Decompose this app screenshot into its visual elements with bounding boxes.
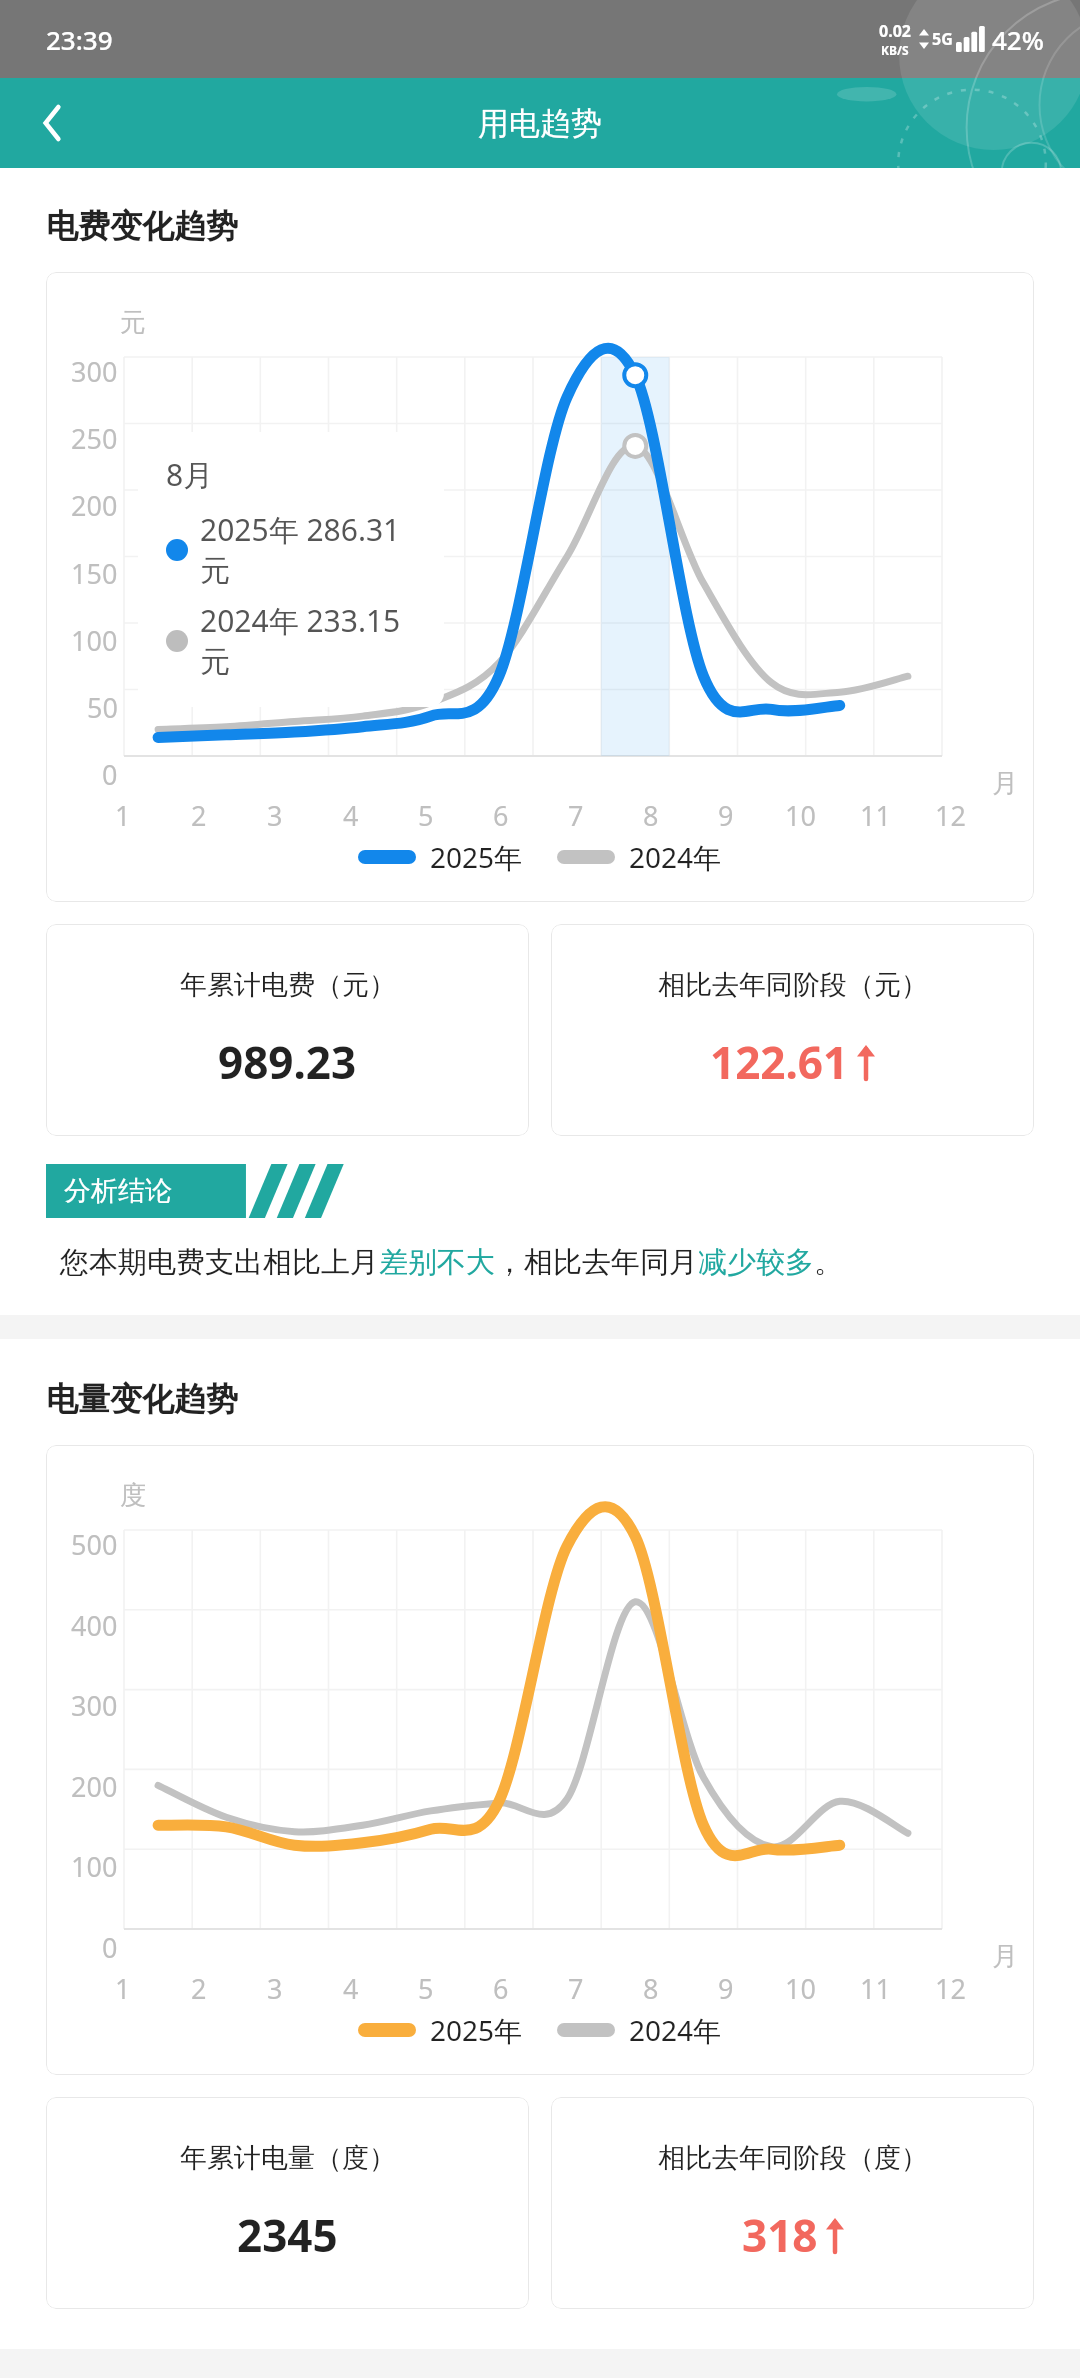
staticText: 度: [120, 1479, 146, 1512]
staticText: 9: [718, 1970, 734, 2007]
staticText: 3: [267, 797, 283, 834]
staticText: 6: [493, 1970, 509, 2007]
staticText: 2024年: [629, 838, 722, 876]
staticText: 2: [191, 1970, 207, 2007]
button[interactable]: 年累计电费（元）: [46, 924, 529, 1136]
staticText: 318: [742, 2205, 818, 2265]
staticText: 8: [643, 797, 659, 834]
button[interactable]: 相比去年同阶段（度）: [551, 2097, 1034, 2309]
staticText: 250: [71, 420, 118, 457]
staticText: 年累计电费（元）: [180, 968, 396, 1002]
staticText: 分析结论: [64, 1174, 172, 1208]
staticText: 5: [418, 1970, 434, 2007]
staticText: 1: [115, 797, 131, 834]
staticText: 7: [568, 1970, 584, 2007]
staticText: 月: [992, 1940, 1018, 1973]
staticText: 2025年: [430, 2011, 523, 2049]
staticText: 月: [992, 767, 1018, 800]
staticText: 4: [343, 797, 359, 834]
staticText: 元: [120, 306, 146, 339]
staticText: 50: [87, 689, 118, 726]
staticText: 6: [493, 797, 509, 834]
button[interactable]: 年累计电量（度）: [46, 2097, 529, 2309]
staticText: 100: [71, 1848, 118, 1885]
staticText: 2024年: [629, 2011, 722, 2049]
staticText: 10: [785, 1970, 816, 2007]
staticText: 300: [71, 1687, 118, 1724]
staticText: 年累计电量（度）: [180, 2141, 396, 2175]
staticText: 150: [71, 555, 118, 592]
staticText: 200: [71, 487, 118, 524]
staticText: 300: [71, 353, 118, 390]
staticText: 2025年: [430, 838, 523, 876]
staticText: 相比去年同阶段（度）: [658, 2141, 928, 2175]
staticText: KB/S: [881, 42, 909, 58]
staticText: 2024年 233.15元: [200, 600, 426, 681]
staticText: 8: [643, 1970, 659, 2007]
staticText: 400: [71, 1607, 118, 1644]
staticText: 2345: [237, 2205, 338, 2265]
staticText: 100: [71, 622, 118, 659]
staticText: 0.02: [879, 20, 911, 42]
button[interactable]: Back: [22, 93, 82, 153]
staticText: 9: [718, 797, 734, 834]
button[interactable]: 相比去年同阶段（元）: [551, 924, 1034, 1136]
staticText: 7: [568, 797, 584, 834]
staticText: 相比去年同阶段（元）: [658, 968, 928, 1002]
staticText: 4: [343, 1970, 359, 2007]
staticText: 0: [102, 1929, 118, 1966]
staticText: 2: [191, 797, 207, 834]
staticText: 8月: [166, 454, 214, 495]
staticText: 0: [102, 756, 118, 793]
staticText: 12: [935, 1970, 966, 2007]
staticText: 11: [860, 797, 891, 834]
staticText: 5: [418, 797, 434, 834]
staticText: 2025年 286.31元: [200, 509, 426, 590]
staticText: 电费变化趋势: [46, 206, 238, 246]
staticText: 42%: [992, 22, 1044, 57]
staticText: 3: [267, 1970, 283, 2007]
staticText: 989.23: [218, 1032, 357, 1092]
staticText: 200: [71, 1768, 118, 1805]
staticText: 5G: [932, 28, 953, 50]
staticText: 11: [860, 1970, 891, 2007]
staticText: 500: [71, 1526, 118, 1563]
staticText: 电量变化趋势: [46, 1379, 238, 1419]
staticText: 10: [785, 797, 816, 834]
staticText: 1: [115, 1970, 131, 2007]
staticText: 您本期电费支出相比上月差别不大，相比去年同月减少较多。: [60, 1244, 843, 1281]
staticText: 12: [935, 797, 966, 834]
staticText: 122.61: [710, 1032, 849, 1092]
staticText: 用电趋势: [478, 104, 602, 143]
staticText: 23:39: [46, 22, 113, 57]
